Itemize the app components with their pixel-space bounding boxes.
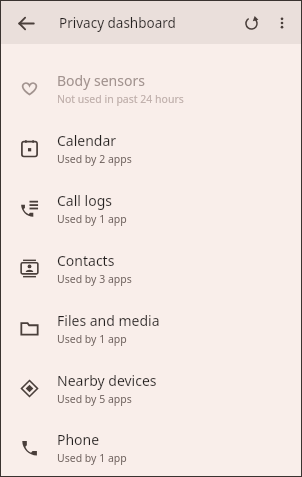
button[interactable]: Files and media [1, 298, 301, 358]
staticText: Not used in past 24 hours [57, 92, 184, 106]
staticText: Contacts [57, 251, 115, 270]
staticText: Used by 5 apps [57, 392, 132, 406]
staticText: Files and media [57, 311, 160, 330]
button[interactable]: Refresh [235, 7, 267, 39]
staticText: Used by 2 apps [57, 152, 132, 166]
staticText: Phone [57, 430, 100, 449]
staticText: Used by 1 app [57, 332, 127, 346]
staticText: Calendar [57, 131, 117, 150]
staticText: Used by 1 app [57, 212, 127, 226]
button[interactable]: Contacts [1, 238, 301, 298]
staticText: Body sensors [57, 71, 145, 90]
button[interactable]: Body sensors [1, 58, 301, 118]
staticText: Call logs [57, 191, 112, 210]
staticText: Used by 3 apps [57, 272, 132, 286]
button[interactable]: More options [267, 8, 297, 38]
button[interactable]: Calendar [1, 118, 301, 178]
button[interactable]: Call logs [1, 178, 301, 238]
button[interactable]: Nearby devices [1, 358, 301, 418]
staticText: Used by 1 app [57, 451, 127, 465]
button[interactable]: Back [9, 6, 43, 40]
staticText: Privacy dashboard [59, 14, 176, 32]
staticText: Nearby devices [57, 371, 157, 390]
button[interactable]: Phone [1, 418, 301, 476]
